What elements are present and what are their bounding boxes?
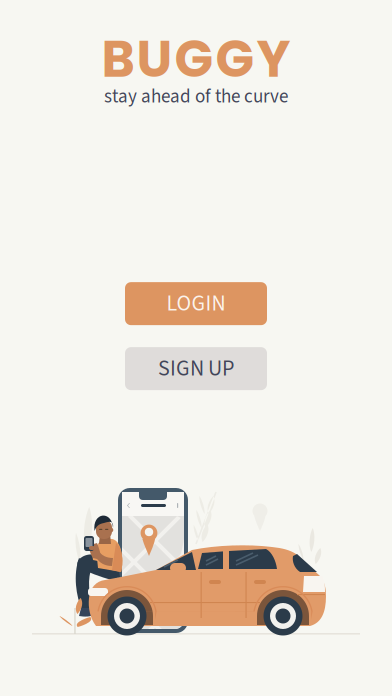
staticText: BUGGY [101, 23, 290, 94]
staticText: LOGIN [166, 288, 225, 319]
button[interactable]: LOGIN [125, 282, 267, 325]
button[interactable]: SIGN UP [125, 347, 267, 390]
staticText: stay ahead of the curve [104, 83, 288, 110]
staticText: SIGN UP [158, 353, 234, 384]
